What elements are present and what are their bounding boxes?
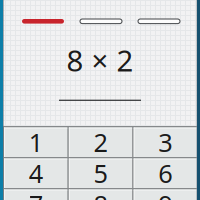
staticText: 5 (93, 156, 107, 190)
button[interactable]: 7 (4, 189, 67, 200)
button[interactable]: 1 (4, 127, 67, 157)
staticText: 6 (158, 156, 172, 190)
staticText: 2 (93, 125, 107, 159)
button[interactable]: 5 (69, 158, 132, 188)
button[interactable]: 6 (134, 158, 197, 188)
button[interactable]: 2 (69, 127, 132, 157)
button[interactable]: 9 (134, 189, 197, 200)
staticText: 7 (29, 187, 43, 200)
button[interactable]: 8 (69, 189, 132, 200)
button[interactable]: 4 (4, 158, 67, 188)
staticText: 8 (93, 187, 107, 200)
staticText: 4 (29, 156, 43, 190)
staticText: 1 (29, 125, 43, 159)
button[interactable]: 3 (134, 127, 197, 157)
staticText: 3 (158, 125, 172, 159)
staticText: 8 × 2 (66, 40, 133, 79)
staticText: 9 (158, 187, 172, 200)
